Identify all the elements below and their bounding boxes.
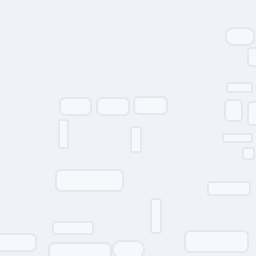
button[interactable]: Done	[226, 28, 254, 45]
button[interactable]: Primary card	[56, 170, 123, 191]
button[interactable]: Library	[0, 234, 36, 251]
button[interactable]: Option 1	[60, 98, 91, 115]
button[interactable]: Option 3	[134, 97, 167, 114]
button[interactable]: Profile	[185, 231, 248, 252]
button[interactable]: Toggle	[243, 148, 254, 159]
button[interactable]: Search	[113, 241, 144, 256]
button[interactable]: Option 2	[97, 98, 129, 115]
button[interactable]: Browse	[49, 243, 111, 256]
